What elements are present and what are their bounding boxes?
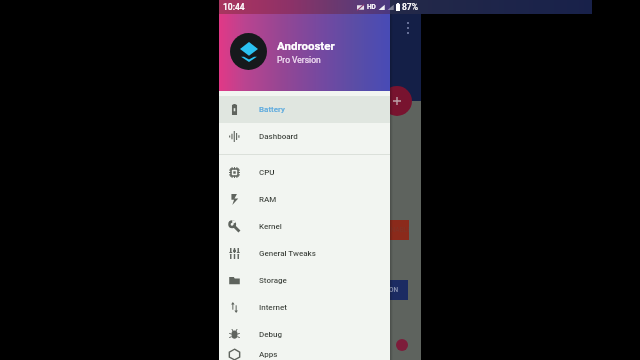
staticText: Debug [259,330,283,339]
button[interactable]: Debug [219,321,390,348]
staticText: Androoster [277,39,335,52]
button[interactable]: More options [400,16,416,40]
button[interactable]: Apps [219,348,390,360]
staticText: Kernel [259,222,282,231]
staticText: ON [389,286,399,294]
staticText: 87% [402,2,418,12]
button[interactable]: Battery [219,96,390,123]
button[interactable]: CPU [219,159,390,186]
staticText: Apps [259,350,278,359]
staticText: CPU [259,168,275,177]
button[interactable]: RAM [219,186,390,213]
staticText: HD [367,3,376,11]
button[interactable]: Add [382,86,412,116]
staticText: Dashboard [259,132,298,141]
staticText: General Tweaks [259,249,316,258]
staticText: Battery [259,105,285,114]
staticText: ENABLE [387,226,409,234]
button[interactable]: Kernel [219,213,390,240]
staticText: 10:44 [223,2,245,12]
staticText: Storage [259,276,287,285]
button[interactable]: Internet [219,294,390,321]
staticText: Pro Version [277,55,321,65]
staticText: Internet [259,303,287,312]
staticText: RAM [259,195,277,204]
button[interactable]: Dashboard [219,123,390,150]
button[interactable]: Storage [219,267,390,294]
button[interactable]: General Tweaks [219,240,390,267]
